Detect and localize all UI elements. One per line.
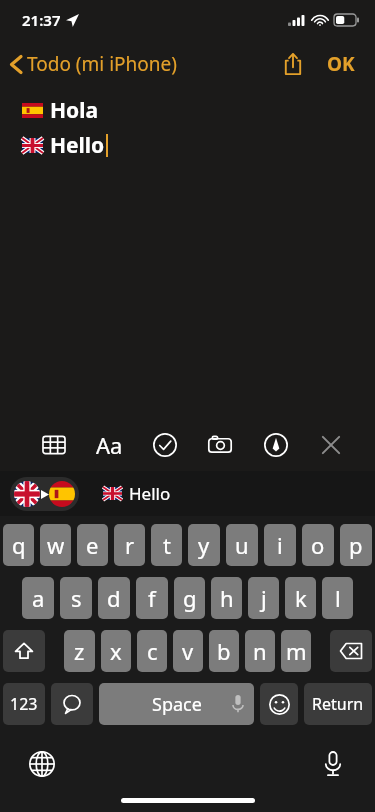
staticText: y	[198, 530, 210, 560]
button[interactable]: y	[188, 524, 220, 566]
button[interactable]: Hello	[101, 476, 173, 511]
button[interactable]: Share	[273, 44, 313, 84]
staticText: v	[182, 636, 194, 666]
button[interactable]: Close keyboard	[311, 425, 351, 465]
button[interactable]: Dictate	[311, 742, 355, 786]
staticText: z	[74, 636, 85, 666]
staticText: k	[295, 583, 307, 613]
button[interactable]: n	[245, 630, 275, 672]
button[interactable]: h	[211, 577, 242, 619]
button[interactable]: OK	[321, 45, 361, 83]
button[interactable]: g	[174, 577, 205, 619]
button[interactable]: c	[137, 630, 167, 672]
staticText: c	[147, 636, 158, 666]
staticText: l	[335, 583, 341, 613]
button[interactable]: f	[136, 577, 168, 619]
button[interactable]: Translate English to Spanish	[10, 477, 79, 511]
staticText: Hello	[50, 131, 105, 160]
button[interactable]: z	[64, 630, 95, 672]
button[interactable]: Shift	[3, 630, 45, 672]
button[interactable]: Camera	[200, 425, 240, 465]
button[interactable]: u	[226, 524, 258, 566]
staticText: Aa	[96, 430, 123, 460]
staticText: OK	[327, 51, 355, 77]
staticText: x	[110, 636, 122, 666]
staticText: q	[12, 530, 26, 560]
button[interactable]: Todo (mi iPhone)	[0, 45, 187, 83]
button[interactable]: Format	[89, 425, 129, 465]
staticText: Return	[312, 693, 364, 715]
button[interactable]: p	[340, 524, 372, 566]
button[interactable]: o	[302, 524, 334, 566]
button[interactable]: Markup	[256, 425, 296, 465]
button[interactable]: Change keyboard language	[20, 742, 64, 786]
staticText: a	[32, 583, 45, 613]
staticText: Todo (mi iPhone)	[27, 51, 177, 77]
staticText: Space	[152, 692, 202, 717]
button[interactable]: t	[151, 524, 182, 566]
staticText: h	[220, 583, 234, 613]
button[interactable]: a	[22, 577, 54, 619]
staticText: 123	[10, 693, 38, 715]
staticText: g	[183, 583, 197, 613]
staticText: n	[253, 636, 267, 666]
button[interactable]: Backspace	[330, 630, 372, 672]
button[interactable]: Space	[99, 683, 254, 725]
staticText: Hello	[129, 482, 171, 505]
staticText: 21:37	[22, 10, 61, 30]
staticText: t	[163, 530, 171, 560]
button[interactable]: k	[285, 577, 316, 619]
staticText: m	[286, 636, 307, 666]
button[interactable]: x	[101, 630, 131, 672]
button[interactable]: 123	[3, 683, 45, 725]
button[interactable]: Dictation suggestions	[51, 683, 93, 725]
button[interactable]: e	[77, 524, 108, 566]
staticText: Hola	[50, 96, 99, 125]
button[interactable]: l	[322, 577, 353, 619]
button[interactable]: r	[114, 524, 145, 566]
staticText: r	[125, 530, 135, 560]
button[interactable]: q	[3, 524, 34, 566]
button[interactable]: Return	[304, 683, 372, 725]
staticText: w	[47, 530, 65, 560]
button[interactable]: v	[173, 630, 203, 672]
button[interactable]: d	[98, 577, 130, 619]
button[interactable]: s	[60, 577, 92, 619]
staticText: e	[86, 530, 99, 560]
button[interactable]: i	[264, 524, 296, 566]
button[interactable]: j	[248, 577, 279, 619]
button[interactable]: b	[209, 630, 239, 672]
button[interactable]: Emoji	[260, 683, 298, 725]
staticText: p	[349, 530, 363, 560]
staticText: d	[107, 583, 121, 613]
staticText: f	[148, 583, 156, 613]
button[interactable]: Table	[34, 425, 74, 465]
button[interactable]: Checklist	[145, 425, 185, 465]
staticText: b	[217, 636, 231, 666]
staticText: j	[261, 583, 267, 613]
button[interactable]: w	[40, 524, 71, 566]
staticText: i	[277, 530, 283, 560]
staticText: o	[311, 530, 325, 560]
staticText: u	[235, 530, 249, 560]
staticText: s	[71, 583, 82, 613]
button[interactable]: m	[281, 630, 311, 672]
